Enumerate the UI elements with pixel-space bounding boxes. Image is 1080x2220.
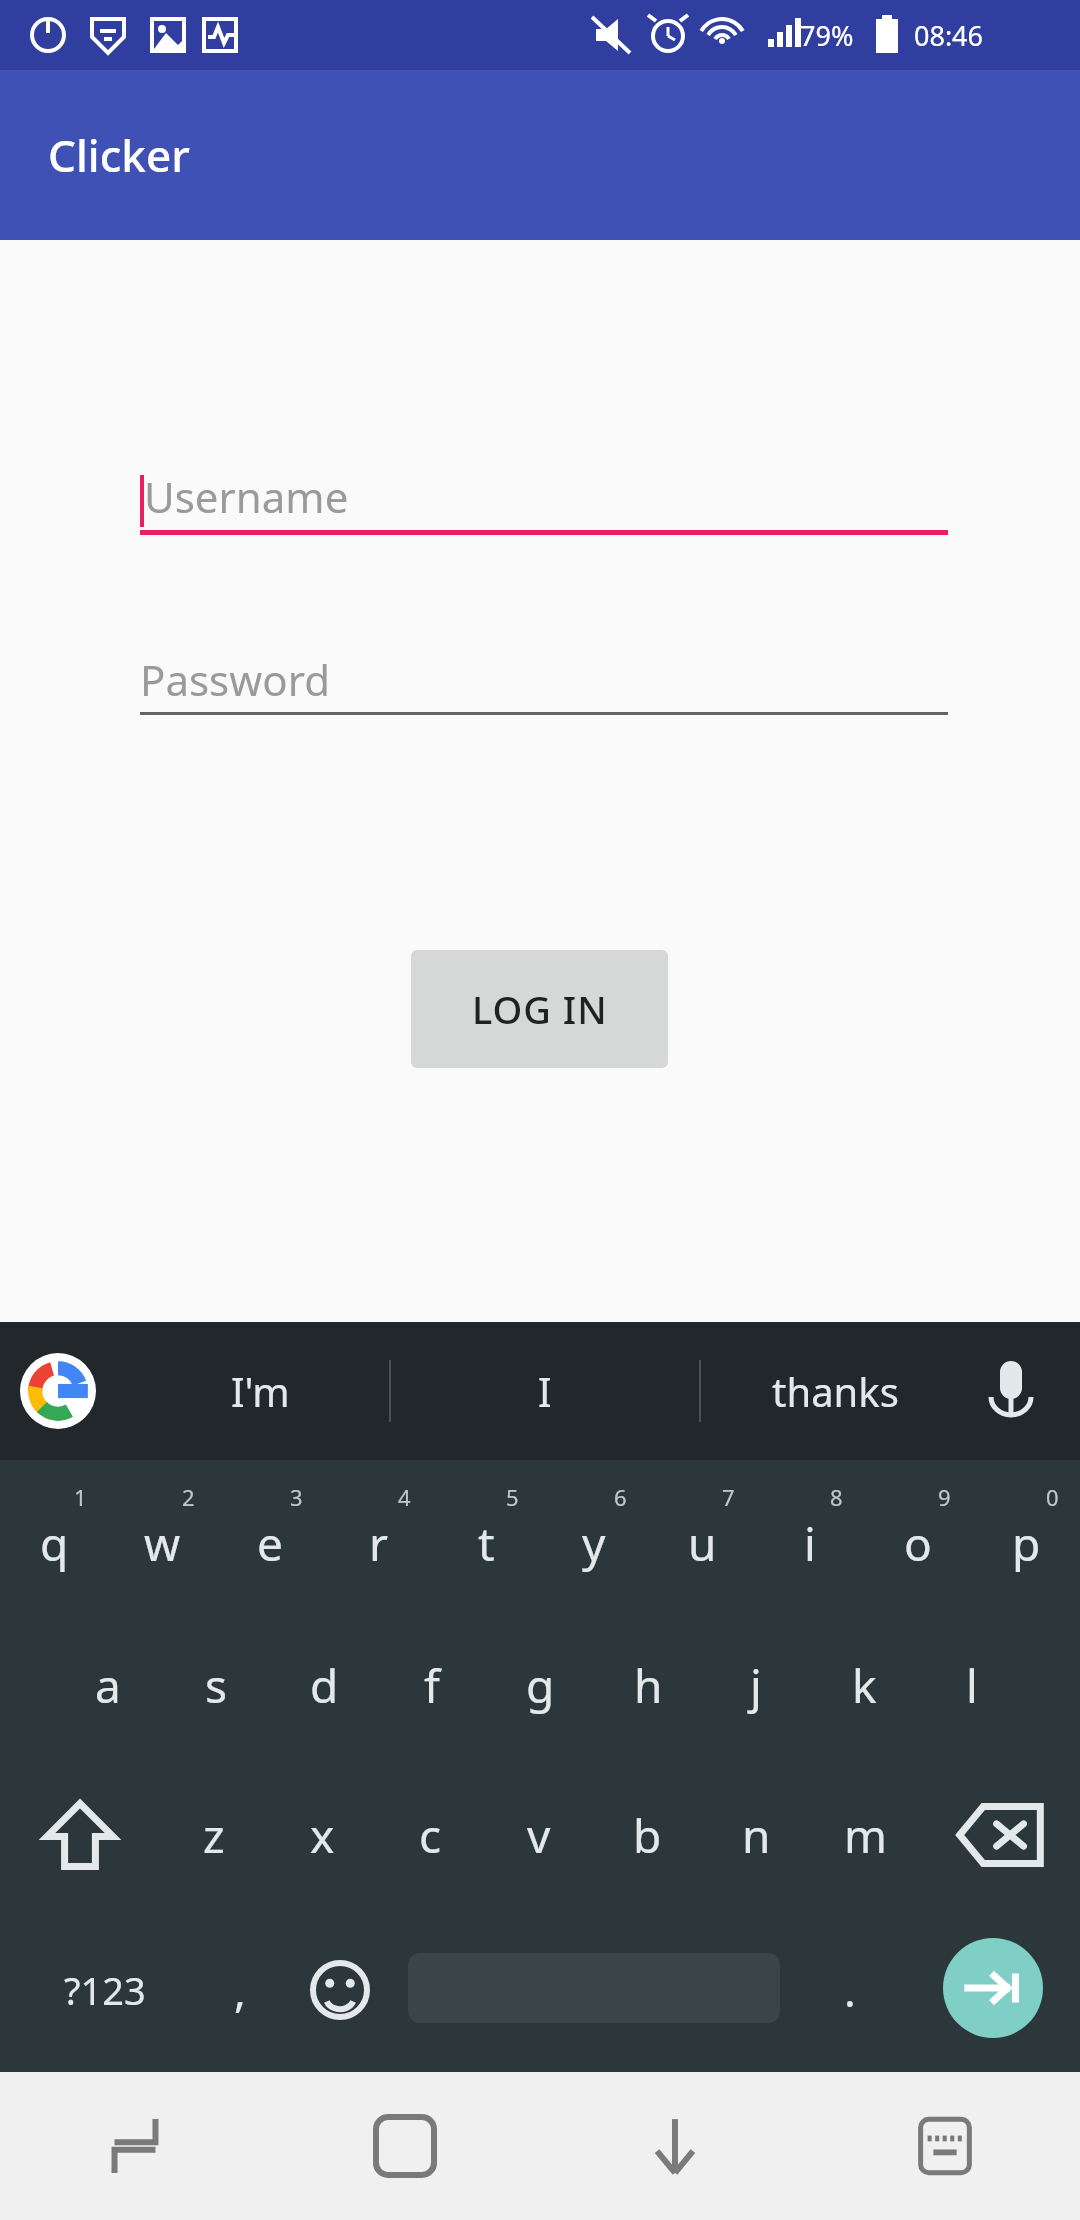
staticText: I <box>538 1364 552 1418</box>
staticText: , <box>234 1960 246 2020</box>
staticText: b <box>633 1804 662 1867</box>
button[interactable]: LOG IN <box>411 950 668 1068</box>
staticText: f <box>424 1654 440 1717</box>
staticText: h <box>634 1654 663 1717</box>
staticText: a <box>95 1654 121 1717</box>
staticText: o <box>904 1512 932 1575</box>
staticText: g <box>526 1654 555 1717</box>
staticText: c <box>419 1804 442 1867</box>
button[interactable]: o <box>864 1460 972 1610</box>
staticText: I'm <box>231 1364 290 1418</box>
button[interactable]: u <box>648 1460 756 1610</box>
button[interactable]: g <box>486 1610 594 1760</box>
staticText: . <box>844 1960 856 2020</box>
staticText: 8 <box>830 1482 843 1512</box>
button[interactable]: c <box>376 1760 484 1910</box>
staticText: w <box>144 1512 181 1575</box>
staticText: n <box>742 1804 771 1867</box>
button[interactable]: Home <box>270 2072 540 2220</box>
button[interactable]: a <box>54 1610 162 1760</box>
staticText: q <box>40 1512 69 1575</box>
staticText: l <box>966 1654 978 1717</box>
staticText: thanks <box>772 1364 899 1418</box>
staticText: 0 <box>1046 1482 1059 1512</box>
button[interactable]: d <box>270 1610 378 1760</box>
button[interactable]: l <box>918 1610 1026 1760</box>
staticText: m <box>844 1804 888 1867</box>
button[interactable]: i <box>756 1460 864 1610</box>
button[interactable]: e <box>216 1460 324 1610</box>
staticText: ?123 <box>64 1964 146 2016</box>
staticText: y <box>582 1512 606 1575</box>
button[interactable]: Password <box>140 652 948 710</box>
button[interactable]: Recents <box>0 2072 270 2220</box>
button[interactable]: w <box>108 1460 216 1610</box>
button[interactable]: p <box>972 1460 1080 1610</box>
button[interactable]: Hide keyboard <box>540 2072 810 2220</box>
button[interactable]: Voice input <box>966 1346 1056 1436</box>
button[interactable]: Emoji <box>280 1910 400 2070</box>
button[interactable]: q <box>0 1460 108 1610</box>
staticText: 1 <box>74 1482 87 1512</box>
staticText: 3 <box>290 1482 303 1512</box>
staticText: t <box>478 1512 495 1575</box>
staticText: u <box>688 1512 717 1575</box>
button[interactable]: m <box>811 1760 920 1910</box>
button[interactable]: Switch keyboard <box>810 2072 1080 2220</box>
button[interactable]: v <box>484 1760 593 1910</box>
button[interactable]: ?123 <box>10 1910 200 2070</box>
button[interactable]: , <box>200 1910 280 2070</box>
staticText: Password <box>140 651 330 708</box>
button[interactable]: r <box>324 1460 432 1610</box>
button[interactable]: t <box>432 1460 540 1610</box>
staticText: 9 <box>938 1482 951 1512</box>
button[interactable]: . <box>790 1910 910 2070</box>
staticText: 5 <box>506 1482 519 1512</box>
staticText: LOG IN <box>472 983 608 1035</box>
button[interactable]: j <box>702 1610 810 1760</box>
button[interactable]: x <box>268 1760 376 1910</box>
button[interactable]: s <box>162 1610 270 1760</box>
button[interactable]: Enter <box>943 1938 1043 2038</box>
staticText: v <box>527 1804 551 1867</box>
button[interactable]: z <box>160 1760 268 1910</box>
button[interactable]: Shift <box>0 1760 160 1910</box>
button[interactable]: I'm <box>130 1322 390 1460</box>
staticText: Username <box>144 468 349 525</box>
button[interactable]: n <box>702 1760 811 1910</box>
staticText: 79% <box>800 17 854 54</box>
staticText: p <box>1012 1512 1041 1575</box>
button[interactable]: y <box>540 1460 648 1610</box>
button[interactable]: h <box>594 1610 702 1760</box>
button[interactable]: Backspace <box>920 1760 1080 1910</box>
staticText: i <box>804 1512 816 1575</box>
staticText: z <box>203 1804 225 1867</box>
staticText: 4 <box>398 1482 411 1512</box>
button[interactable]: thanks <box>700 1322 970 1460</box>
staticText: 08:46 <box>914 17 984 54</box>
staticText: k <box>852 1654 877 1717</box>
staticText: Clicker <box>48 125 190 185</box>
staticText: x <box>310 1804 335 1867</box>
button[interactable]: f <box>378 1610 486 1760</box>
staticText: d <box>310 1654 339 1717</box>
staticText: 2 <box>182 1482 195 1512</box>
staticText: s <box>205 1654 228 1717</box>
staticText: 6 <box>614 1482 627 1512</box>
button[interactable]: Google <box>20 1353 96 1429</box>
button[interactable]: I <box>390 1322 700 1460</box>
staticText: j <box>750 1654 762 1717</box>
button[interactable]: k <box>810 1610 918 1760</box>
staticText: 7 <box>722 1482 735 1512</box>
button[interactable]: b <box>593 1760 702 1910</box>
button[interactable]: Username <box>140 470 948 528</box>
staticText: e <box>257 1512 283 1575</box>
staticText: r <box>369 1512 388 1575</box>
